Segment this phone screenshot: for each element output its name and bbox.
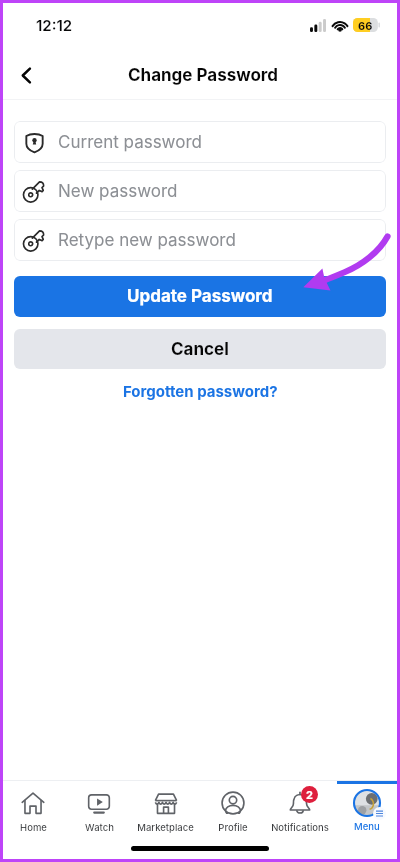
staticText: Update Password	[127, 286, 273, 307]
staticText: Forgotten password?	[123, 382, 278, 400]
button[interactable]: Back	[6, 55, 46, 95]
staticText: Profile	[218, 822, 248, 833]
staticText: Cancel	[171, 339, 229, 360]
button[interactable]: Menu	[333, 781, 400, 834]
button[interactable]: Update Password	[14, 276, 386, 317]
button[interactable]: Current password	[14, 121, 386, 163]
button[interactable]: Cancel	[14, 329, 386, 369]
staticText: New password	[58, 181, 178, 202]
staticText: 66	[358, 19, 373, 32]
staticText: 2	[306, 788, 313, 801]
button[interactable]: Profile	[199, 781, 266, 834]
button[interactable]: Retype new password	[14, 219, 386, 261]
staticText: Home	[20, 822, 47, 833]
button[interactable]: 2	[266, 781, 333, 834]
button[interactable]: Forgotten password?	[0, 381, 400, 401]
staticText: Current password	[58, 132, 202, 153]
staticText: Change Password	[128, 65, 279, 86]
staticText: Watch	[85, 822, 114, 833]
button[interactable]: Watch	[66, 781, 132, 834]
staticText: 12:12	[36, 16, 73, 34]
staticText: Retype new password	[58, 230, 236, 251]
button[interactable]: Home	[0, 781, 66, 834]
staticText: Notifications	[271, 822, 329, 833]
staticText: Marketplace	[137, 822, 194, 833]
staticText: Menu	[354, 821, 380, 832]
button[interactable]: Marketplace	[132, 781, 199, 834]
button[interactable]: New password	[14, 170, 386, 212]
